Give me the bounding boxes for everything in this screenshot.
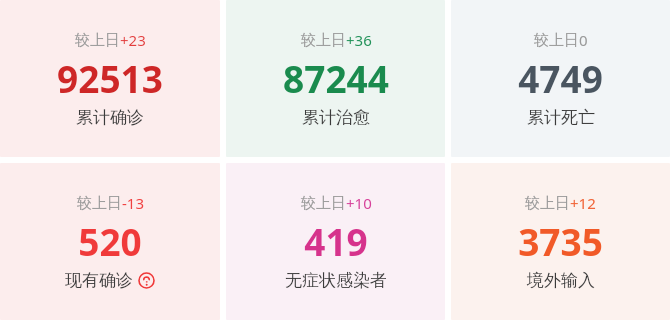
staticText: 4749 — [518, 53, 603, 103]
staticText: 87244 — [283, 53, 389, 103]
staticText: 0 — [579, 30, 588, 50]
staticText: +23 — [120, 30, 146, 50]
staticText: 3735 — [518, 216, 603, 266]
staticText: 419 — [304, 216, 368, 266]
staticText: 较上日 — [301, 31, 346, 50]
staticText: 较上日 — [534, 31, 579, 50]
button[interactable]: 较上日 — [451, 0, 670, 157]
staticText: 境外输入 — [527, 270, 595, 291]
staticText: 较上日 — [77, 194, 122, 213]
staticText: +12 — [570, 193, 596, 213]
staticText: 较上日 — [525, 194, 570, 213]
staticText: 累计死亡 — [527, 107, 595, 128]
staticText: -13 — [122, 193, 144, 213]
button[interactable]: 较上日 — [451, 163, 670, 320]
button[interactable]: 较上日 — [226, 0, 445, 157]
staticText: 现有确诊 — [65, 270, 133, 291]
staticText: 较上日 — [301, 194, 346, 213]
staticText: 92513 — [57, 53, 163, 103]
button[interactable]: 较上日 — [0, 163, 220, 320]
staticText: 累计确诊 — [76, 107, 144, 128]
staticText: +36 — [346, 30, 372, 50]
button[interactable]: 较上日 — [226, 163, 445, 320]
staticText: 520 — [78, 216, 142, 266]
button[interactable]: 较上日 — [0, 0, 220, 157]
button[interactable]: Help about current confirmed cases — [138, 272, 155, 289]
staticText: 较上日 — [75, 31, 120, 50]
staticText: 累计治愈 — [302, 107, 370, 128]
staticText: 无症状感染者 — [285, 270, 387, 291]
staticText: +10 — [346, 193, 372, 213]
